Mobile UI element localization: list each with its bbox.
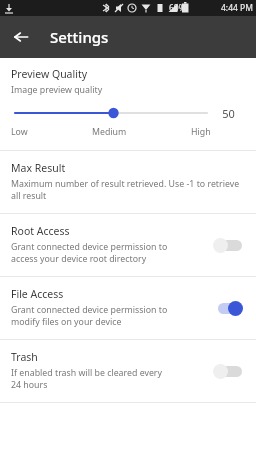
staticText: 60% <box>169 2 186 14</box>
button[interactable]: Trash toggle <box>213 361 247 381</box>
button[interactable]: Preview Quality <box>0 58 256 150</box>
staticText: Grant connected device permission to mod… <box>11 304 173 328</box>
staticText: Root Access <box>11 224 70 238</box>
staticText: 50 <box>222 106 235 121</box>
button[interactable]: File Access <box>0 277 256 339</box>
staticText: Grant connected device permission to acc… <box>11 241 173 265</box>
staticText: File Access <box>11 287 64 301</box>
staticText: Maximum number of result retrieved. Use … <box>11 178 245 202</box>
staticText: If enabled trash will be cleared every 2… <box>11 367 173 391</box>
staticText: Trash <box>11 350 38 364</box>
button[interactable]: Root Access <box>0 214 256 276</box>
button[interactable]: Trash <box>0 340 256 402</box>
staticText: Image preview quality <box>11 84 103 96</box>
staticText: Max Result <box>11 161 66 175</box>
button[interactable]: Max Result <box>0 151 256 213</box>
button[interactable]: Root access toggle <box>213 235 247 255</box>
staticText: 4:44 PM <box>221 2 253 14</box>
staticText: Preview Quality <box>11 67 88 81</box>
button[interactable]: File access toggle <box>213 298 247 318</box>
staticText: High <box>191 126 211 138</box>
button[interactable]: Back <box>6 22 36 52</box>
staticText: Medium <box>92 126 127 138</box>
staticText: Low <box>11 126 28 138</box>
staticText: Settings <box>50 27 109 47</box>
button[interactable]: Preview quality slider <box>11 105 211 121</box>
